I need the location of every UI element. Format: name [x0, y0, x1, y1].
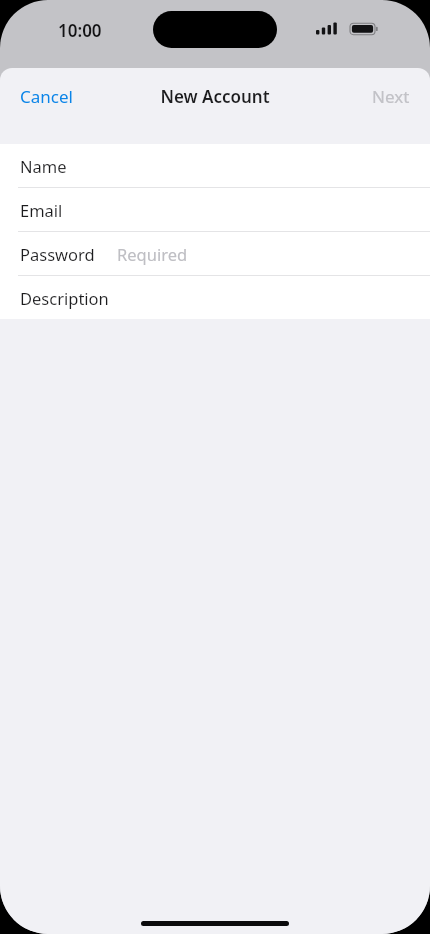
button[interactable]: Next — [360, 77, 422, 116]
button[interactable]: Email — [0, 188, 430, 232]
button[interactable]: Password — [0, 232, 430, 276]
staticText: Next — [372, 85, 410, 108]
staticText: Password — [20, 243, 95, 265]
staticText: Required — [117, 243, 188, 265]
button[interactable]: Cancel — [8, 77, 85, 116]
staticText: New Account — [160, 85, 270, 108]
staticText: Name — [20, 155, 67, 177]
button[interactable]: Name — [0, 144, 430, 188]
button[interactable]: Description — [0, 276, 430, 319]
staticText: 10:00 — [58, 19, 102, 42]
staticText: Description — [20, 287, 109, 309]
staticText: Cancel — [20, 85, 73, 108]
staticText: Email — [20, 199, 63, 221]
